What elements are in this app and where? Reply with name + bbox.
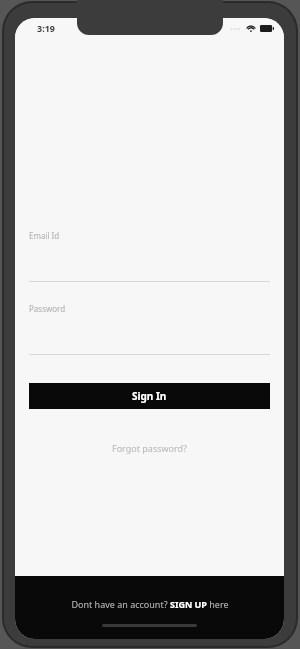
staticText: Forgot password? [112, 442, 188, 454]
button[interactable]: Forgot password? [106, 439, 194, 457]
button[interactable]: Dont have an account? SIGN UP here [63, 594, 237, 614]
button[interactable]: Sign In [29, 383, 270, 409]
staticText: Email Id [29, 230, 60, 241]
staticText: Password [29, 303, 66, 314]
staticText: Dont have an account? SIGN UP here [71, 598, 229, 610]
staticText: 3:19 [37, 22, 55, 34]
staticText: Sign In [132, 389, 167, 403]
